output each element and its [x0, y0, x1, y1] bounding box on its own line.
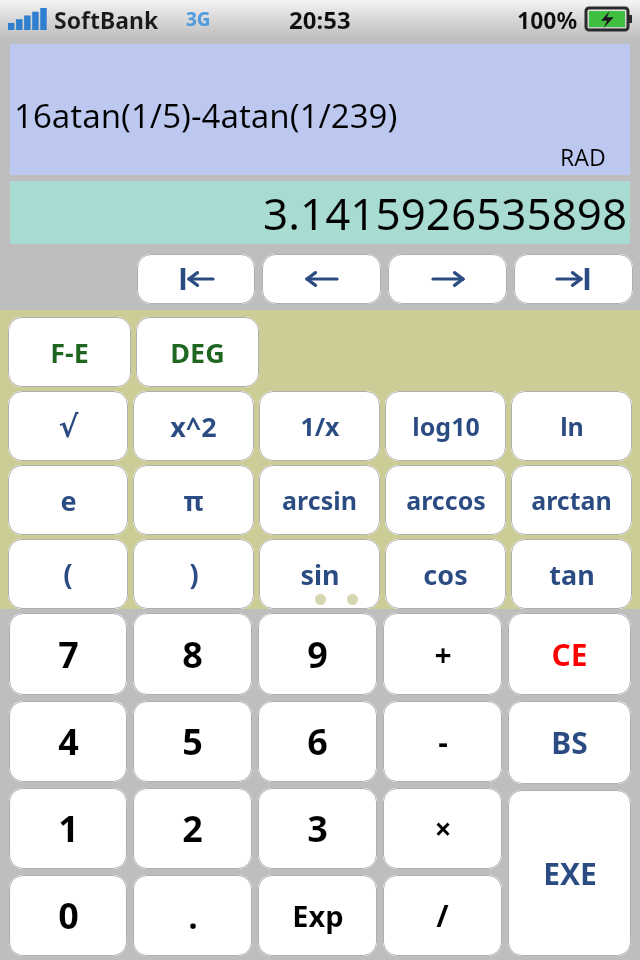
staticText: √ — [58, 409, 79, 444]
staticText: ) — [189, 555, 199, 593]
staticText: RAD — [560, 141, 606, 172]
button[interactable]: 5 — [133, 701, 252, 782]
staticText: BS — [551, 722, 588, 763]
button[interactable]: 1/x — [259, 391, 380, 461]
button[interactable]: × — [383, 788, 502, 869]
button[interactable]: Exp — [258, 875, 377, 956]
staticText: + — [434, 634, 452, 675]
staticText: cos — [423, 556, 468, 593]
button[interactable]: / — [383, 875, 502, 956]
staticText: 6 — [307, 717, 328, 766]
button[interactable]: arccos — [385, 465, 506, 535]
staticText: 2 — [182, 804, 203, 853]
button[interactable]: + — [383, 613, 502, 695]
staticText: 1 — [58, 804, 79, 853]
staticText: 16atan(1/5)-4atan(1/239) — [14, 93, 398, 138]
staticText: 3G — [186, 6, 211, 32]
staticText: / — [436, 895, 449, 936]
button[interactable]: ) — [133, 539, 254, 609]
button[interactable]: CE — [508, 613, 631, 695]
button[interactable]: DEG — [136, 317, 259, 387]
staticText: × — [434, 808, 452, 849]
button[interactable]: sin — [259, 539, 380, 609]
button[interactable]: arctan — [511, 465, 632, 535]
button[interactable]: x^2 — [133, 391, 254, 461]
staticText: π — [183, 482, 204, 519]
staticText: 3 — [307, 804, 328, 853]
button[interactable]: 6 — [258, 701, 377, 782]
staticText: DEG — [170, 334, 225, 371]
button[interactable]: 1 — [9, 788, 127, 869]
button[interactable]: π — [133, 465, 254, 535]
button[interactable]: Move right — [388, 254, 507, 304]
staticText: SoftBank — [54, 4, 159, 35]
staticText: 3.1415926535898 — [263, 183, 628, 243]
staticText: - — [438, 721, 448, 762]
button[interactable]: √ — [8, 391, 128, 461]
button[interactable]: 9 — [258, 613, 377, 695]
staticText: 0 — [58, 891, 79, 940]
staticText: 100% — [517, 4, 578, 35]
staticText: arctan — [531, 483, 612, 517]
staticText: Exp — [292, 896, 344, 935]
staticText: arcsin — [282, 483, 357, 517]
button[interactable]: 16atan(1/5)-4atan(1/239) — [10, 44, 630, 175]
button[interactable]: BS — [508, 701, 631, 784]
button[interactable]: EXE — [508, 790, 631, 956]
staticText: 5 — [182, 717, 203, 766]
button[interactable]: 8 — [133, 613, 252, 695]
staticText: EXE — [543, 853, 597, 894]
staticText: 7 — [58, 630, 79, 679]
staticText: F-E — [50, 334, 89, 371]
button[interactable]: 3.1415926535898 — [10, 181, 630, 244]
button[interactable]: tan — [511, 539, 632, 609]
staticText: 4 — [58, 717, 79, 766]
staticText: tan — [549, 556, 595, 593]
button[interactable]: ln — [511, 391, 632, 461]
button[interactable]: arcsin — [259, 465, 380, 535]
staticText: e — [60, 482, 77, 519]
button[interactable]: ( — [8, 539, 128, 609]
staticText: x^2 — [170, 408, 217, 445]
button[interactable]: 2 — [133, 788, 252, 869]
staticText: log10 — [412, 409, 480, 443]
staticText: 9 — [307, 630, 328, 679]
staticText: ( — [63, 555, 73, 593]
button[interactable]: - — [383, 701, 502, 782]
button[interactable]: Move to start — [137, 254, 255, 304]
staticText: . — [188, 893, 198, 939]
staticText: CE — [551, 634, 588, 675]
button[interactable]: 4 — [9, 701, 127, 782]
button[interactable]: cos — [385, 539, 506, 609]
staticText: 20:53 — [289, 3, 351, 36]
staticText: ln — [560, 409, 584, 443]
button[interactable]: . — [133, 875, 252, 956]
button[interactable]: F-E — [8, 317, 131, 387]
button[interactable]: Move left — [262, 254, 381, 304]
staticText: 1/x — [300, 409, 340, 443]
button[interactable]: 7 — [9, 613, 127, 695]
staticText: sin — [300, 556, 340, 593]
staticText: arccos — [406, 483, 486, 517]
button[interactable]: 3 — [258, 788, 377, 869]
button[interactable]: e — [8, 465, 128, 535]
button[interactable]: Move to end — [514, 254, 633, 304]
button[interactable]: log10 — [385, 391, 506, 461]
staticText: 8 — [182, 630, 203, 679]
button[interactable]: 0 — [9, 875, 127, 956]
